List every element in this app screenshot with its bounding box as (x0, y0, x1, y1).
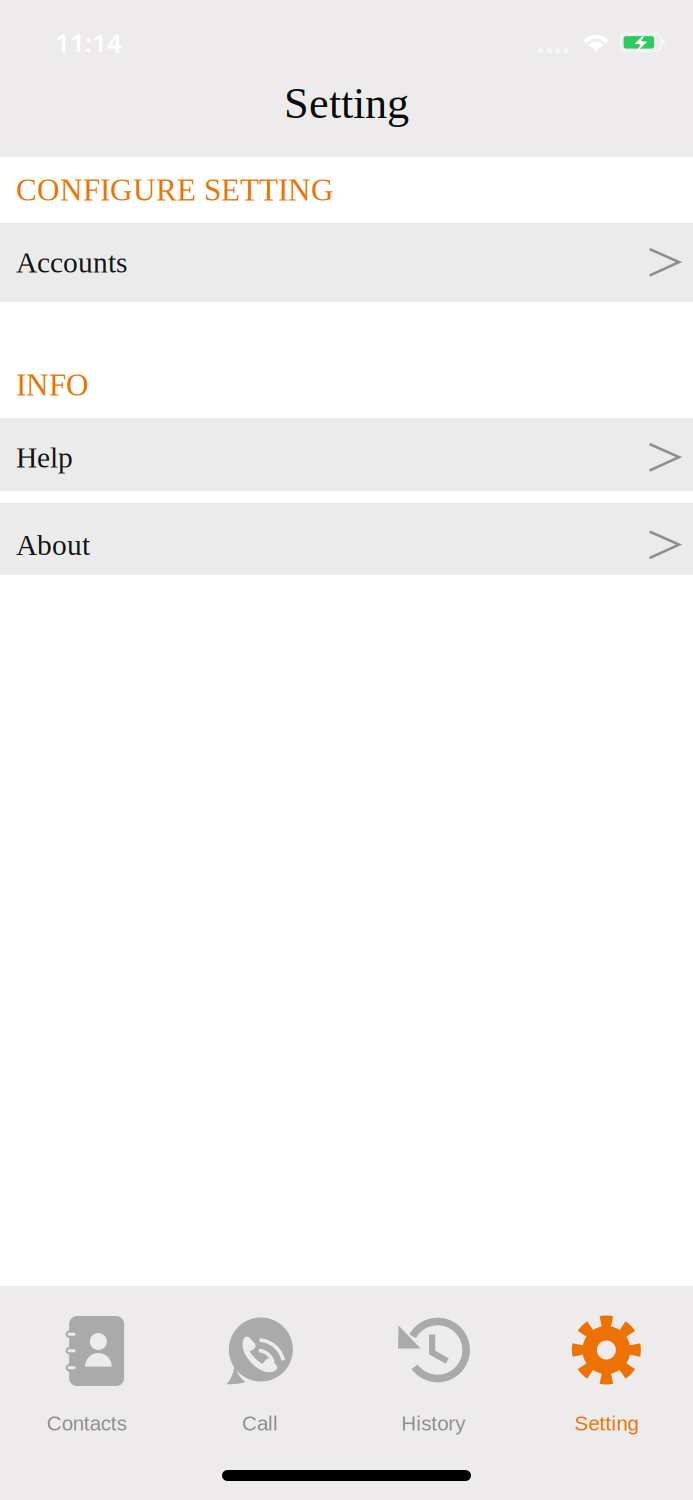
button[interactable]: History (346, 1286, 520, 1451)
staticText: About (16, 529, 90, 561)
staticText: Help (16, 441, 73, 474)
staticText: Setting (574, 1412, 638, 1435)
button[interactable]: Contacts (0, 1286, 173, 1451)
staticText: INFO (16, 368, 89, 402)
staticText: History (401, 1412, 465, 1435)
staticText: Call (242, 1412, 278, 1435)
button[interactable]: Accounts (0, 223, 693, 302)
staticText: Contacts (47, 1412, 127, 1435)
button[interactable]: Setting (520, 1286, 693, 1451)
staticText: Accounts (16, 246, 127, 279)
button[interactable]: About (0, 503, 693, 575)
staticText: CONFIGURE SETTING (16, 173, 334, 207)
button[interactable]: Help (0, 418, 693, 491)
button[interactable]: Call (173, 1286, 346, 1451)
staticText: 11:14 (55, 25, 122, 60)
staticText: Setting (284, 78, 409, 127)
